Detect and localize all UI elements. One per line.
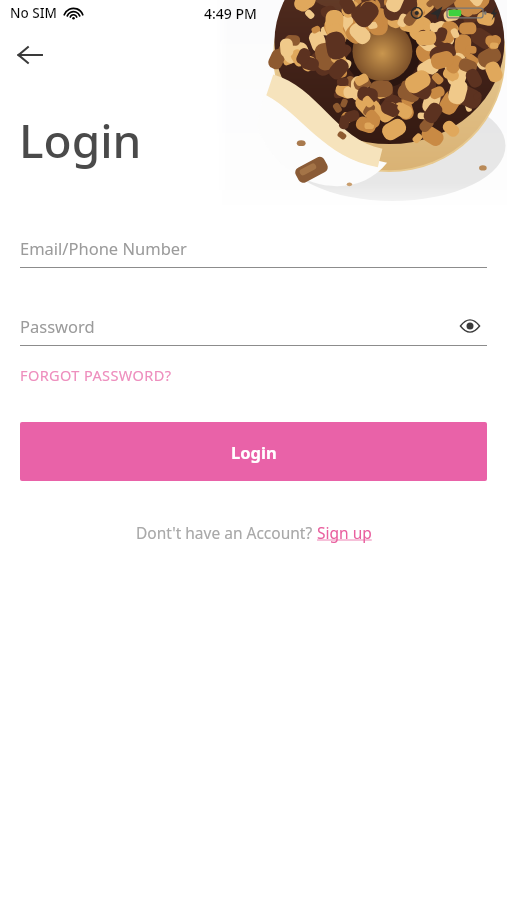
button[interactable]: Password — [20, 306, 487, 346]
button[interactable]: Back — [6, 31, 54, 79]
staticText: Login — [231, 441, 277, 463]
staticText: Password — [20, 315, 95, 337]
button[interactable]: Login — [20, 422, 487, 481]
staticText: Login — [19, 109, 142, 172]
button[interactable]: Email/Phone Number — [20, 228, 487, 268]
button[interactable]: Show password — [453, 309, 487, 343]
button[interactable]: FORGOT PASSWORD? — [20, 360, 172, 390]
staticText: Dont't have an Account? — [136, 522, 317, 543]
staticText: FORGOT PASSWORD? — [20, 365, 172, 385]
staticText: Sign up — [317, 522, 372, 543]
button[interactable]: Sign up — [317, 522, 372, 543]
staticText: 4:49 PM — [204, 4, 257, 23]
staticText: No SIM — [10, 4, 57, 22]
staticText: Email/Phone Number — [20, 237, 187, 259]
